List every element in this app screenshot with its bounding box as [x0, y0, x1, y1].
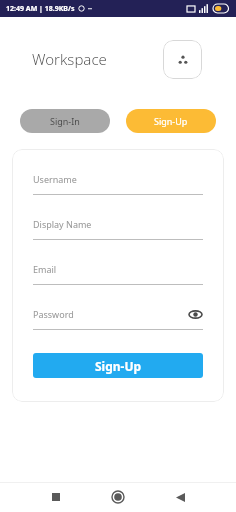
- staticText: Username: [33, 173, 77, 185]
- button[interactable]: Sign-Up: [126, 109, 216, 133]
- staticText: Password: [33, 308, 74, 320]
- staticText: Sign-Up: [154, 115, 188, 127]
- button[interactable]: Username: [33, 171, 203, 195]
- staticText: ··: [88, 4, 92, 14]
- staticText: Display Name: [33, 218, 92, 230]
- button[interactable]: Recents: [39, 482, 73, 512]
- button[interactable]: Email: [33, 261, 203, 285]
- staticText: Sign-Up: [95, 358, 142, 374]
- button[interactable]: Sign-In: [20, 109, 110, 133]
- button[interactable]: Password: [33, 306, 203, 330]
- button[interactable]: Home: [101, 482, 135, 512]
- staticText: 12:49 AM | 18.9KB/s: [6, 4, 75, 14]
- button[interactable]: Menu: [163, 40, 202, 79]
- staticText: Workspace: [32, 49, 107, 69]
- button[interactable]: Show password: [187, 306, 203, 322]
- staticText: Email: [33, 263, 57, 275]
- button[interactable]: Display Name: [33, 216, 203, 240]
- button[interactable]: Sign-Up: [33, 353, 203, 378]
- staticText: Sign-In: [50, 115, 80, 127]
- button[interactable]: Back: [163, 482, 197, 512]
